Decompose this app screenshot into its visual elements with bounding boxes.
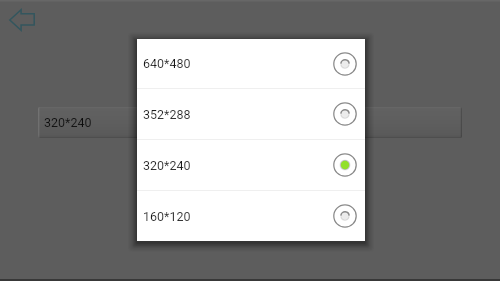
button[interactable]: 320*240 bbox=[38, 107, 462, 138]
staticText: 320*240 bbox=[143, 158, 333, 173]
staticText: 352*288 bbox=[143, 107, 333, 122]
button[interactable]: 320*240 bbox=[137, 140, 365, 190]
button[interactable]: Back bbox=[9, 9, 35, 31]
staticText: 640*480 bbox=[143, 56, 333, 71]
staticText: 160*120 bbox=[143, 209, 333, 224]
staticText: 320*240 bbox=[44, 115, 92, 130]
button[interactable]: 160*120 bbox=[137, 191, 365, 241]
button[interactable]: 352*288 bbox=[137, 89, 365, 139]
button[interactable]: 640*480 bbox=[137, 39, 365, 88]
